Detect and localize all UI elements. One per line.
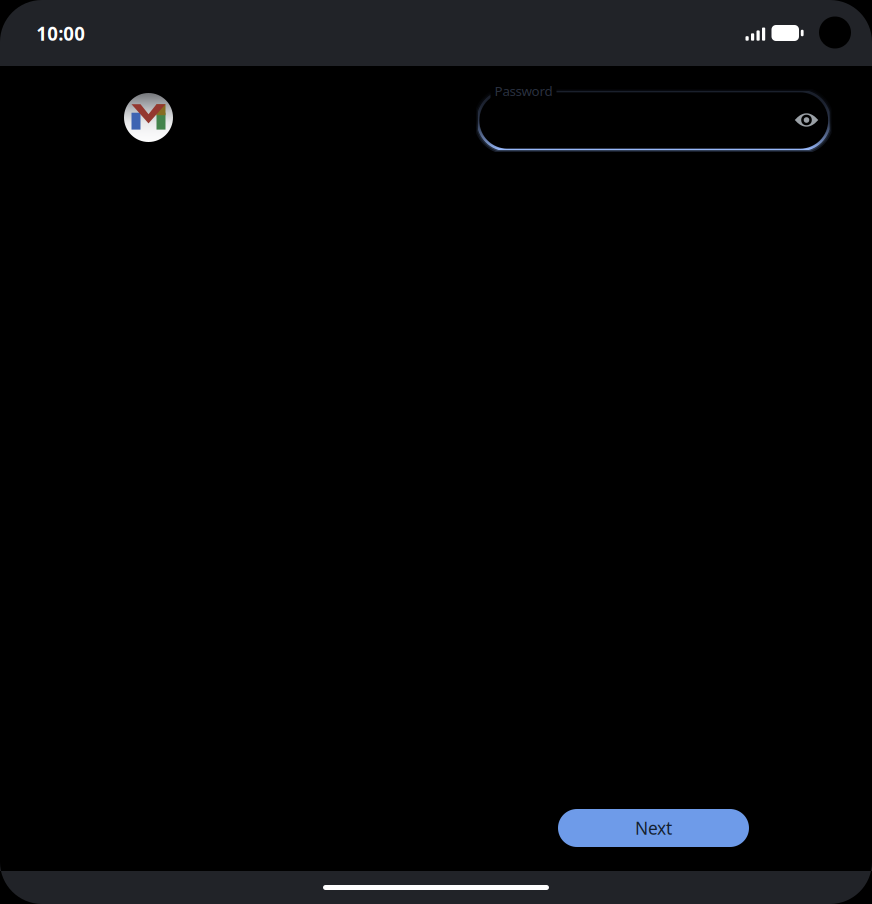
staticText: Password [494, 82, 552, 100]
staticText: Next [635, 816, 672, 839]
button[interactable]: Next [558, 809, 749, 847]
button[interactable]: Password [478, 91, 829, 150]
staticText: 10:00 [36, 21, 85, 46]
button[interactable]: Show password [783, 97, 829, 143]
